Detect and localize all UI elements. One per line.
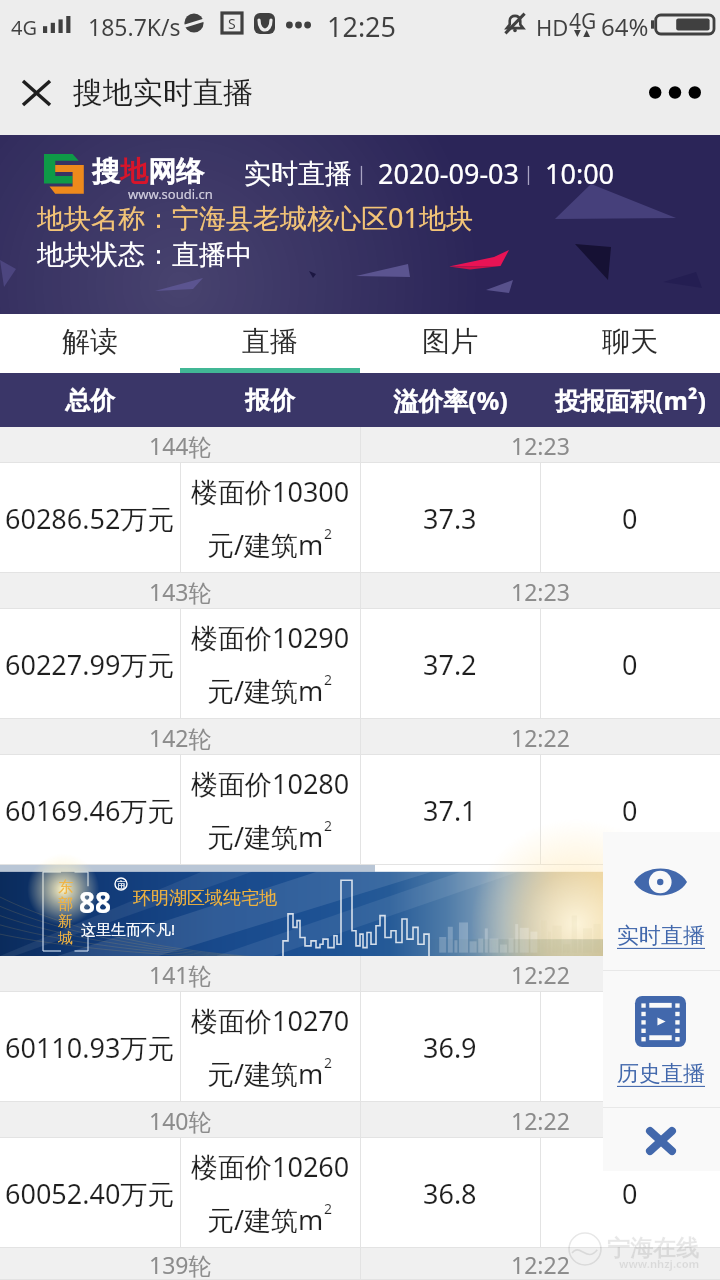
staticText: 楼面价10260: [191, 1148, 350, 1185]
staticText: 12:25: [327, 8, 397, 45]
staticText: 报价: [245, 385, 295, 416]
staticText: 4G: [569, 7, 597, 36]
staticText: 投报面积(m²): [555, 383, 706, 417]
button[interactable]: 东: [0, 865, 720, 956]
staticText: 12:22: [511, 1105, 570, 1136]
staticText: 2: [324, 670, 333, 689]
staticText: 地块状态：直播中: [37, 238, 253, 272]
staticText: 楼面价10290: [191, 619, 350, 656]
staticText: 2: [324, 524, 333, 543]
staticText: 2: [324, 1053, 333, 1072]
staticText: 楼面价10270: [191, 1002, 350, 1039]
staticText: 地块名称：宁海县老城核心区01地块: [37, 199, 473, 236]
staticText: 搜地实时直播: [73, 74, 253, 112]
staticText: 宁海在线: [607, 1234, 699, 1263]
staticText: 10:00: [538, 155, 615, 192]
staticText: 城: [58, 929, 73, 946]
staticText: 网络: [148, 154, 204, 189]
staticText: HD: [536, 12, 569, 42]
staticText: 东: [58, 878, 73, 895]
staticText: 64%: [601, 10, 649, 43]
staticText: 直播: [242, 324, 298, 359]
staticText: 12:23: [511, 576, 570, 607]
staticText: 解读: [62, 324, 118, 359]
staticText: 60110.93万元: [5, 1029, 175, 1066]
staticText: www.soudi.cn: [128, 185, 213, 203]
staticText: 36.9: [423, 1029, 477, 1066]
staticText: 部: [58, 895, 73, 912]
staticText: S: [228, 14, 236, 33]
staticText: 185.7K/s: [88, 11, 181, 42]
staticText: 实时直播: [244, 157, 352, 191]
button[interactable]: 直播: [180, 314, 360, 373]
staticText: 环明湖区域纯宅地: [133, 887, 277, 910]
staticText: 0: [622, 1175, 638, 1212]
button[interactable]: 实时直播: [603, 832, 720, 970]
staticText: 地: [120, 154, 148, 189]
staticText: 元/建筑m: [207, 1055, 324, 1092]
staticText: 60227.99万元: [5, 646, 175, 683]
button[interactable]: More options: [630, 50, 720, 135]
button[interactable]: Close: [0, 50, 73, 135]
staticText: 140轮: [149, 1105, 212, 1136]
staticText: 亩: [117, 879, 126, 890]
staticText: 2020-09-03: [371, 155, 519, 192]
staticText: 总价: [65, 385, 115, 416]
staticText: 新: [58, 912, 73, 929]
staticText: 2: [324, 1199, 333, 1218]
staticText: 0: [622, 792, 638, 829]
staticText: 141轮: [149, 959, 212, 990]
staticText: 12:23: [511, 430, 570, 461]
staticText: 12:22: [511, 1249, 570, 1280]
staticText: 143轮: [149, 576, 212, 607]
staticText: 60169.46万元: [5, 792, 175, 829]
staticText: 12:22: [511, 722, 570, 753]
staticText: 溢价率(%): [393, 383, 508, 417]
staticText: 36.8: [423, 1175, 477, 1212]
staticText: 60052.40万元: [5, 1175, 175, 1212]
staticText: 37.2: [423, 646, 477, 683]
staticText: www.nhzj.com: [619, 1256, 700, 1271]
staticText: ｜: [519, 162, 538, 186]
staticText: 元/建筑m: [207, 1201, 324, 1238]
staticText: ｜: [352, 162, 371, 186]
staticText: 这里生而不凡!: [81, 919, 176, 939]
staticText: 139轮: [149, 1249, 212, 1280]
staticText: 0: [622, 500, 638, 537]
button[interactable]: Close menu: [603, 1108, 720, 1171]
staticText: 实时直播: [617, 922, 705, 950]
staticText: 4G: [11, 14, 37, 41]
staticText: 楼面价10300: [191, 473, 350, 510]
staticText: 88: [79, 883, 112, 921]
staticText: 144轮: [149, 430, 212, 461]
staticText: 元/建筑m: [207, 818, 324, 855]
staticText: 142轮: [149, 722, 212, 753]
staticText: 2: [324, 816, 333, 835]
staticText: 历史直播: [617, 1060, 705, 1088]
staticText: 元/建筑m: [207, 526, 324, 563]
staticText: 12:22: [511, 959, 570, 990]
staticText: 37.1: [423, 792, 477, 829]
button[interactable]: 图片: [360, 314, 540, 373]
button[interactable]: 解读: [0, 314, 180, 373]
staticText: 60286.52万元: [5, 500, 175, 537]
staticText: 37.3: [423, 500, 477, 537]
staticText: 图片: [422, 324, 478, 359]
staticText: 0: [622, 646, 638, 683]
staticText: 聊天: [602, 324, 658, 359]
staticText: 元/建筑m: [207, 672, 324, 709]
button[interactable]: 聊天: [540, 314, 720, 373]
button[interactable]: 历史直播: [603, 971, 720, 1107]
staticText: 搜: [92, 154, 120, 189]
staticText: 楼面价10280: [191, 765, 350, 802]
staticText: 0: [622, 1029, 638, 1066]
